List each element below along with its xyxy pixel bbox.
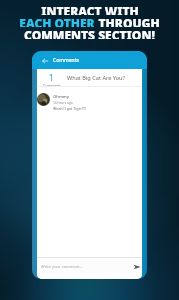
staticText: INTERACT WITH (41, 3, 139, 15)
staticText: Woah! I got Tiger!!!! (53, 106, 86, 111)
staticText: 1 (49, 72, 54, 83)
staticText: Comment (43, 83, 61, 88)
staticText: 14 hours ago (53, 101, 73, 105)
staticText: Write your comment... (41, 264, 132, 269)
button[interactable]: Send (132, 262, 141, 271)
button[interactable]: Back (32, 51, 147, 69)
button[interactable]: Write your comment... (37, 260, 142, 273)
staticText: What Big Cat Are You? (67, 74, 125, 82)
staticText: Ohmmy (53, 94, 70, 100)
staticText: COMMENTS SECTION! (24, 27, 155, 39)
button[interactable]: Back (40, 56, 49, 65)
staticText: EACH OTHER (19, 15, 95, 27)
staticText: Comments (53, 57, 80, 64)
staticText: THROUGH (95, 15, 160, 27)
